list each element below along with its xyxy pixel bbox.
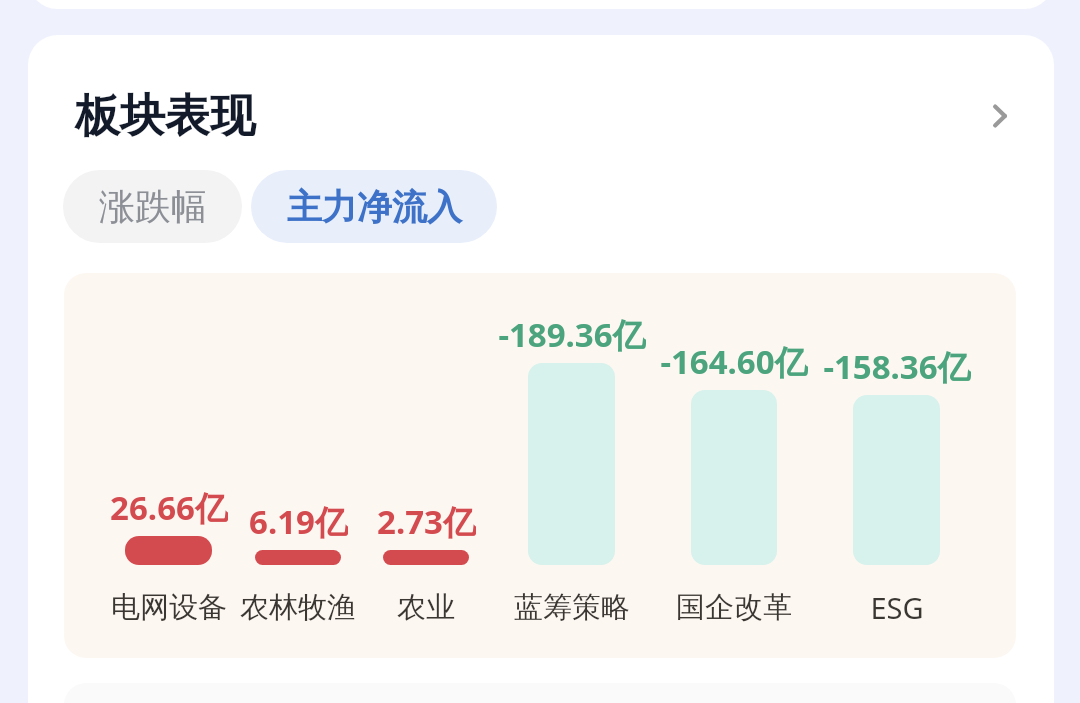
staticText: 6.19亿 bbox=[249, 499, 348, 543]
staticText: -164.60亿 bbox=[660, 339, 808, 383]
staticText: 2.73亿 bbox=[377, 499, 476, 543]
staticText: 农业 bbox=[397, 589, 455, 626]
button[interactable]: 电网设备 26.66亿 bbox=[107, 482, 231, 627]
button[interactable]: 农业 2.73亿 bbox=[364, 496, 488, 627]
staticText: 蓝筹策略 bbox=[514, 589, 630, 626]
button[interactable]: 主力净流入 bbox=[251, 170, 497, 243]
staticText: 板块表现 bbox=[75, 88, 255, 145]
button[interactable]: 查看更多 bbox=[976, 92, 1024, 140]
staticText: -189.36亿 bbox=[498, 312, 646, 356]
staticText: 主力净流入 bbox=[287, 185, 462, 229]
button[interactable]: 涨跌幅 bbox=[63, 170, 242, 243]
staticText: 国企改革 bbox=[676, 589, 792, 626]
staticText: -158.36亿 bbox=[823, 344, 971, 388]
button[interactable]: 国企改革 -164.60亿 bbox=[672, 336, 796, 627]
button[interactable]: ESG -158.36亿 bbox=[835, 341, 959, 627]
staticText: ESG bbox=[870, 588, 924, 627]
button[interactable]: 蓝筹策略 -189.36亿 bbox=[510, 309, 634, 627]
staticText: 26.66亿 bbox=[110, 485, 228, 529]
staticText: 电网设备 bbox=[111, 589, 227, 626]
button[interactable]: 板块表现 bbox=[64, 82, 1006, 150]
button[interactable]: 农林牧渔 6.19亿 bbox=[236, 496, 360, 627]
staticText: 农林牧渔 bbox=[240, 589, 356, 626]
staticText: 涨跌幅 bbox=[99, 184, 207, 229]
